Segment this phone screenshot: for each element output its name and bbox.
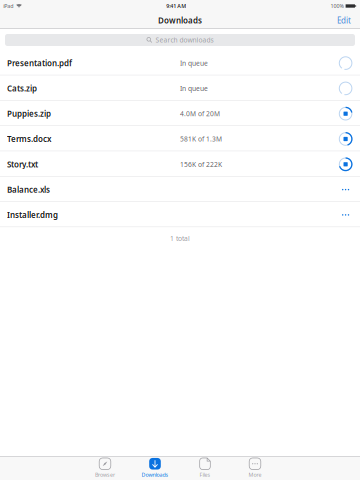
staticText: 581K of 1.3M bbox=[180, 135, 222, 143]
staticText: 1 total bbox=[170, 234, 190, 243]
staticText: Presentation.pdf bbox=[7, 58, 72, 68]
button[interactable]: Browser bbox=[80, 456, 130, 480]
button[interactable]: Installer.dmg bbox=[0, 202, 360, 227]
button[interactable]: Edit bbox=[333, 12, 355, 29]
staticText: Installer.dmg bbox=[7, 210, 58, 220]
staticText: Browser bbox=[95, 471, 115, 478]
staticText: Downloads bbox=[158, 15, 202, 26]
staticText: Terms.docx bbox=[7, 134, 51, 144]
button[interactable]: Presentation.pdf bbox=[0, 50, 360, 75]
staticText: Search downloads bbox=[155, 36, 213, 44]
staticText: 4.0M of 20M bbox=[180, 109, 220, 118]
button[interactable]: Puppies.zip bbox=[0, 101, 360, 126]
button[interactable]: Search downloads bbox=[0, 29, 360, 50]
staticText: Edit bbox=[337, 15, 351, 26]
staticText: Puppies.zip bbox=[7, 108, 51, 119]
staticText: Cats.zip bbox=[7, 83, 37, 94]
staticText: 9:41 AM bbox=[166, 2, 186, 10]
staticText: More bbox=[248, 471, 261, 478]
button[interactable]: Balance.xls bbox=[0, 176, 360, 202]
button[interactable]: Cats.zip bbox=[0, 75, 360, 101]
staticText: 156K of 222K bbox=[180, 160, 222, 169]
staticText: Downloads bbox=[141, 471, 168, 478]
button[interactable]: Terms.docx bbox=[0, 126, 360, 151]
staticText: iPad bbox=[3, 2, 13, 10]
staticText: Balance.xls bbox=[7, 184, 50, 195]
staticText: 100% bbox=[331, 2, 344, 10]
button[interactable]: Story.txt bbox=[0, 151, 360, 176]
staticText: In queue bbox=[180, 59, 208, 68]
button[interactable]: Downloads bbox=[130, 456, 180, 480]
staticText: In queue bbox=[180, 84, 208, 93]
button[interactable]: More bbox=[230, 456, 280, 480]
staticText: Files bbox=[199, 471, 210, 478]
button[interactable]: Files bbox=[180, 456, 230, 480]
staticText: Story.txt bbox=[7, 159, 38, 170]
